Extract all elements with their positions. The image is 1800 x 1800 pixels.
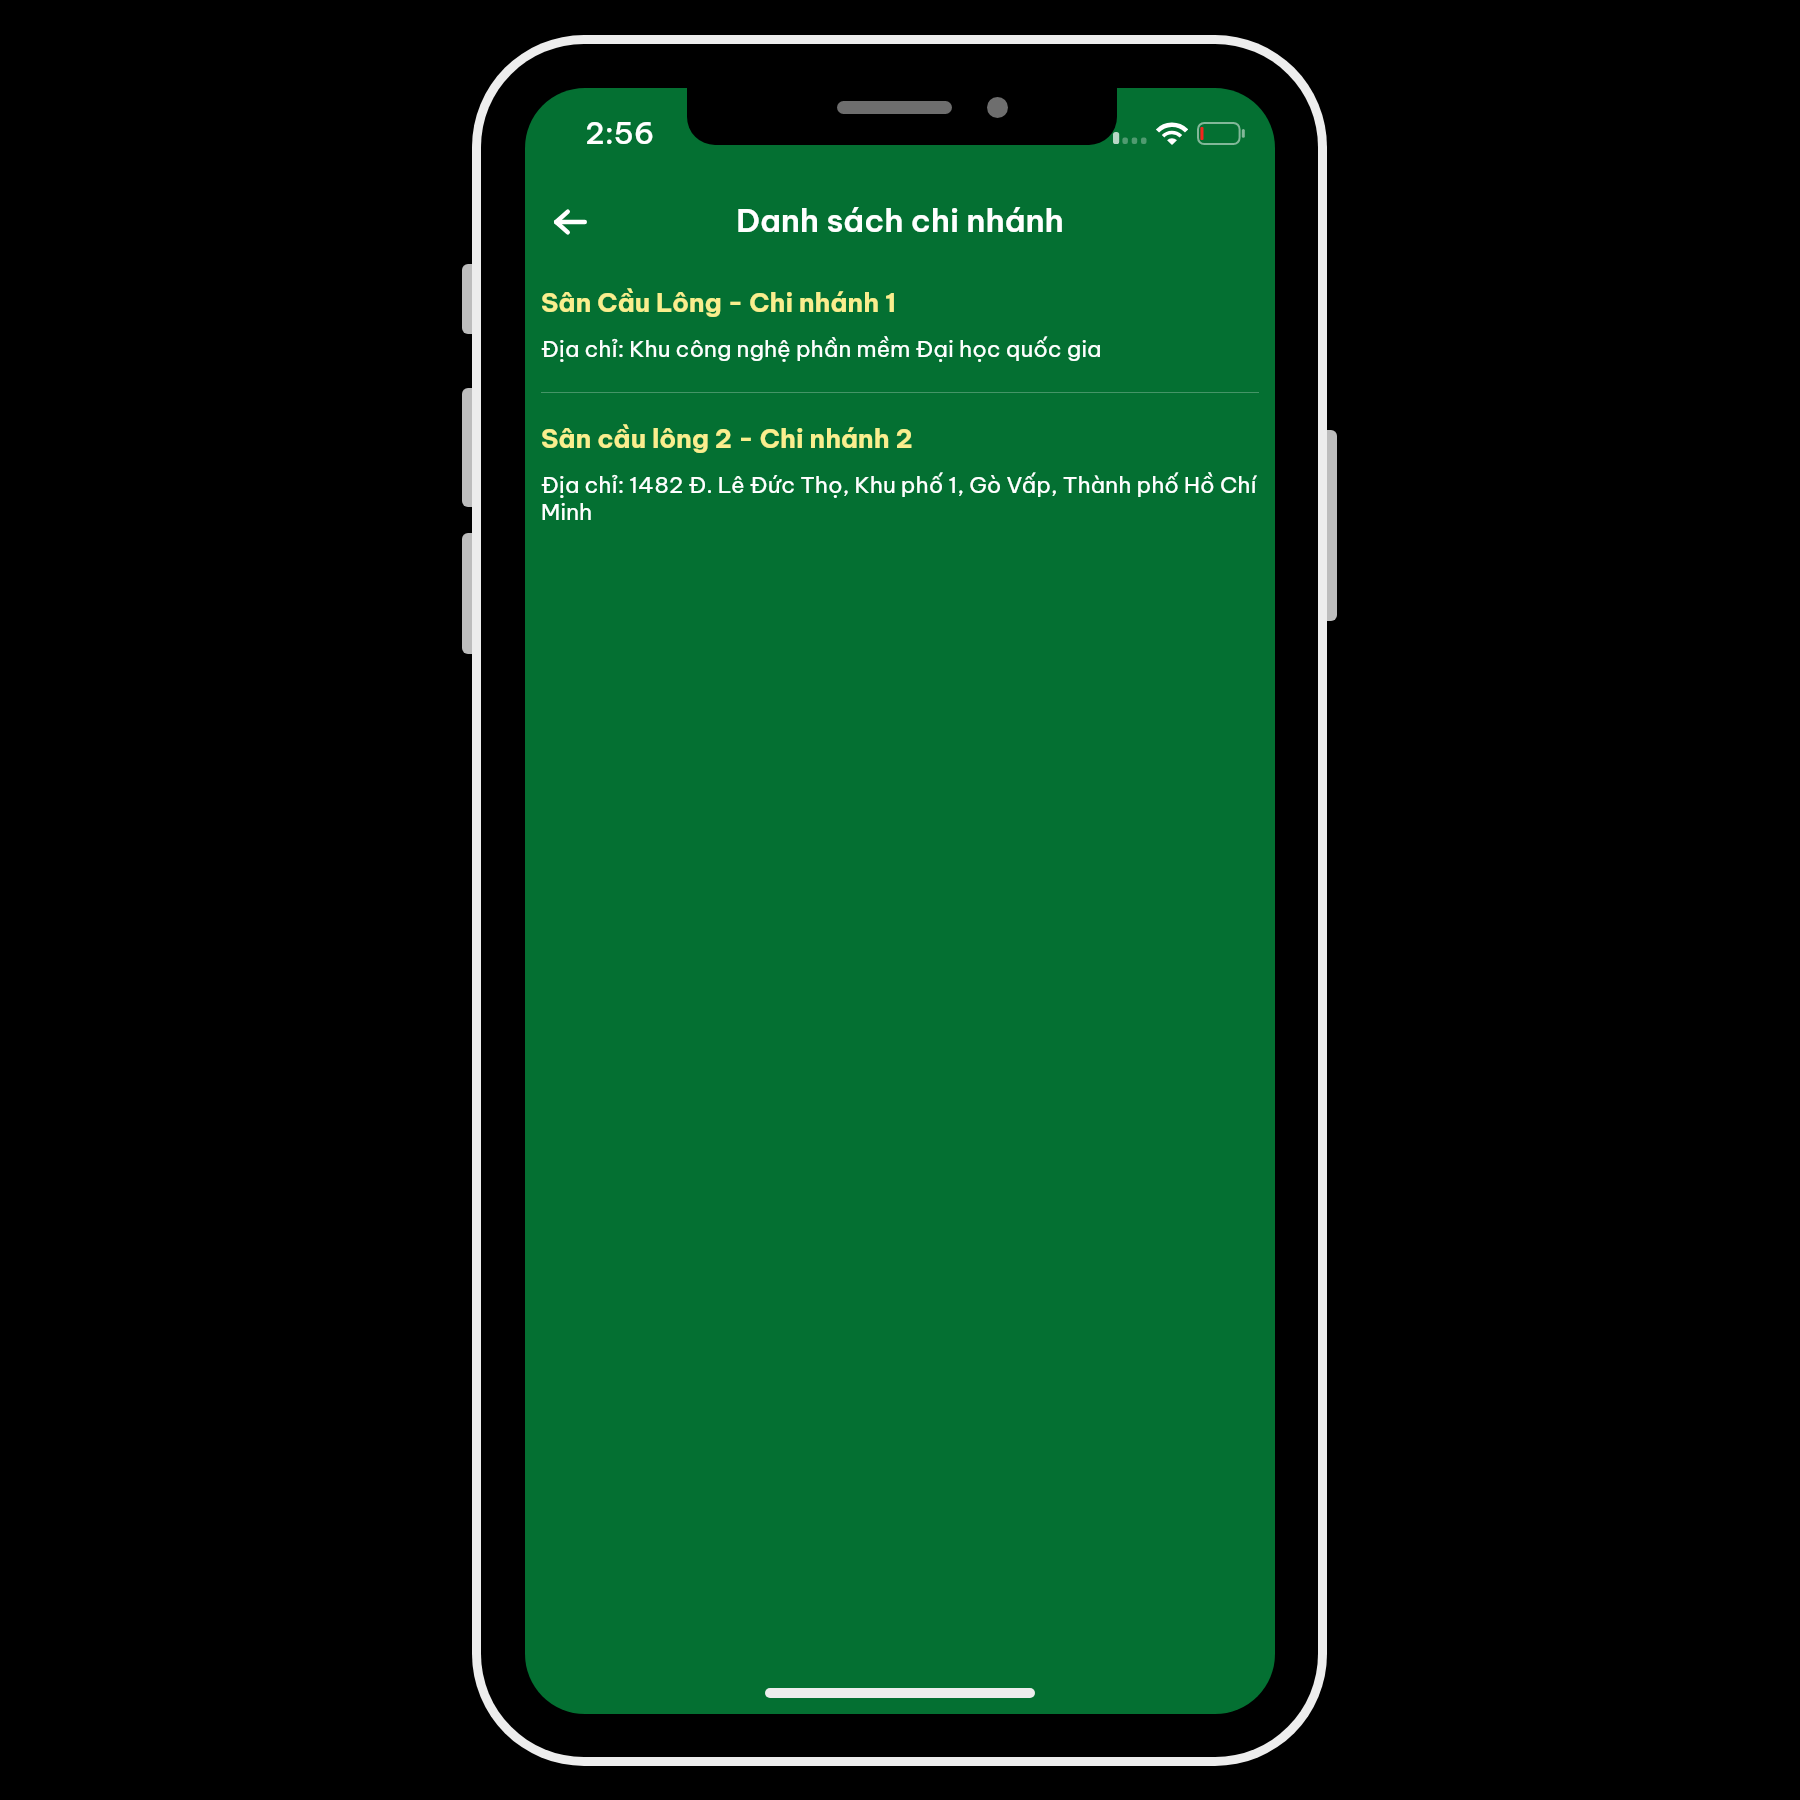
staticText: Địa chỉ: 1482 Đ. Lê Đức Thọ, Khu phố 1, … [541,470,1259,526]
staticText: 2:56 [585,114,655,152]
button[interactable]: Sân Cầu Lông - Chi nhánh 1 [525,286,1275,362]
staticText: Địa chỉ: Khu công nghệ phần mềm Đại học … [541,334,1102,362]
button[interactable]: Back [530,182,610,262]
staticText: Danh sách chi nhánh [525,200,1275,240]
staticText: Sân cầu lông 2 - Chi nhánh 2 [541,422,913,455]
staticText: Sân Cầu Lông - Chi nhánh 1 [541,286,897,319]
button[interactable]: Sân cầu lông 2 - Chi nhánh 2 [525,422,1275,526]
